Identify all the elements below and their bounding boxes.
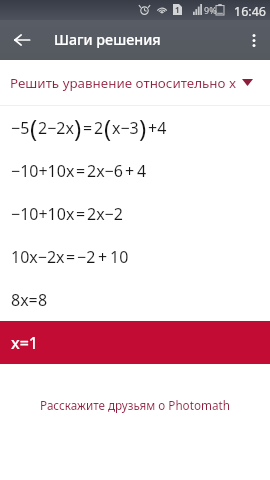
staticText: 2x−6 <box>87 160 123 182</box>
staticText: 1 <box>175 4 180 15</box>
staticText: ( <box>30 111 38 144</box>
staticText: x−3 <box>112 117 139 139</box>
staticText: ) <box>139 111 147 144</box>
staticText: 10x−2x <box>11 246 65 268</box>
staticText: −5 <box>11 117 30 139</box>
button[interactable]: x=1 <box>0 321 270 364</box>
button[interactable]: 10x−2x <box>0 235 270 278</box>
staticText: 2 <box>94 117 104 139</box>
staticText: = <box>83 117 93 139</box>
staticText: 8 <box>38 289 48 311</box>
staticText: −2 <box>77 246 96 268</box>
staticText: 4 <box>137 160 147 182</box>
staticText: = <box>66 246 76 268</box>
staticText: + <box>98 246 108 268</box>
staticText: 8x= <box>11 289 38 311</box>
staticText: 2−2x <box>38 117 74 139</box>
staticText: 9% <box>204 4 217 16</box>
staticText: Решить уравнение относительно x <box>10 74 237 92</box>
staticText: 2x−2 <box>87 203 123 225</box>
staticText: +4 <box>148 117 167 139</box>
button[interactable]: −10+10x <box>0 149 270 192</box>
staticText: −10+10x <box>11 203 75 225</box>
button[interactable]: −5 <box>0 106 270 149</box>
staticText: = <box>76 203 86 225</box>
button[interactable]: Back <box>2 20 42 60</box>
staticText: ) <box>74 111 82 144</box>
staticText: x=1 <box>11 332 38 354</box>
staticText: ( <box>104 111 112 144</box>
staticText: −10+10x <box>11 160 75 182</box>
staticText: = <box>76 160 86 182</box>
staticText: Расскажите друзьям о Photomath <box>40 397 230 413</box>
button[interactable]: Расскажите друзьям о Photomath <box>0 393 270 417</box>
button[interactable]: More options <box>234 20 270 60</box>
button[interactable]: −10+10x <box>0 192 270 235</box>
staticText: 10 <box>110 246 129 268</box>
staticText: 16:46 <box>234 3 266 20</box>
button[interactable]: 8x= <box>0 278 270 321</box>
staticText: + <box>125 160 135 182</box>
staticText: Шаги решения <box>54 30 161 49</box>
button[interactable]: Решить уравнение относительно x <box>0 60 270 105</box>
